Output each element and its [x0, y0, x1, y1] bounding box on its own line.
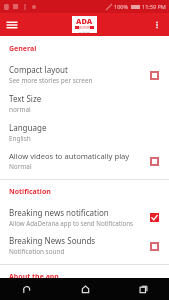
button[interactable]: ADA — [72, 16, 97, 33]
staticText: normal — [9, 105, 31, 114]
staticText: See more stories per screen — [9, 76, 93, 85]
button[interactable]: Text Size — [0, 89, 169, 118]
button[interactable]: Enabled — [148, 211, 160, 223]
button[interactable]: Breaking news notification — [0, 203, 169, 231]
button[interactable]: Open navigation menu — [3, 16, 21, 34]
staticText: Notification — [9, 187, 51, 197]
button[interactable]: Home — [75, 279, 95, 299]
button[interactable]: Breaking News Sounds — [0, 231, 169, 260]
staticText: General — [9, 44, 37, 54]
staticText: Notification sound — [9, 247, 65, 256]
button[interactable]: Disabled — [148, 69, 160, 81]
staticText: Allow AdaDerana app to send Notification… — [9, 219, 134, 227]
staticText: About the app — [9, 272, 59, 278]
staticText: Breaking News Sounds — [9, 235, 96, 246]
button[interactable]: Allow videos to automatically play — [0, 147, 169, 175]
staticText: Normal — [9, 162, 32, 171]
staticText: ADA — [76, 16, 93, 26]
button[interactable]: Disabled — [148, 155, 160, 167]
button[interactable]: More options — [148, 16, 166, 34]
staticText: Compact layout — [9, 64, 68, 75]
staticText: 100% — [114, 3, 129, 10]
staticText: අද දෙරණ — [79, 30, 90, 33]
button[interactable]: Disabled — [148, 240, 160, 252]
staticText: Text Size — [9, 93, 42, 104]
staticText: English — [9, 134, 31, 143]
button[interactable]: Compact layout — [0, 60, 169, 89]
staticText: 11:59 PM — [142, 3, 166, 10]
button[interactable]: Language — [0, 118, 169, 147]
staticText: Allow videos to automatically play — [9, 151, 130, 161]
staticText: DERANA — [79, 26, 90, 29]
button[interactable]: Recent apps — [133, 279, 153, 299]
staticText: Language — [9, 122, 47, 133]
button[interactable]: Back — [16, 279, 36, 299]
staticText: Breaking news notification — [9, 207, 109, 218]
